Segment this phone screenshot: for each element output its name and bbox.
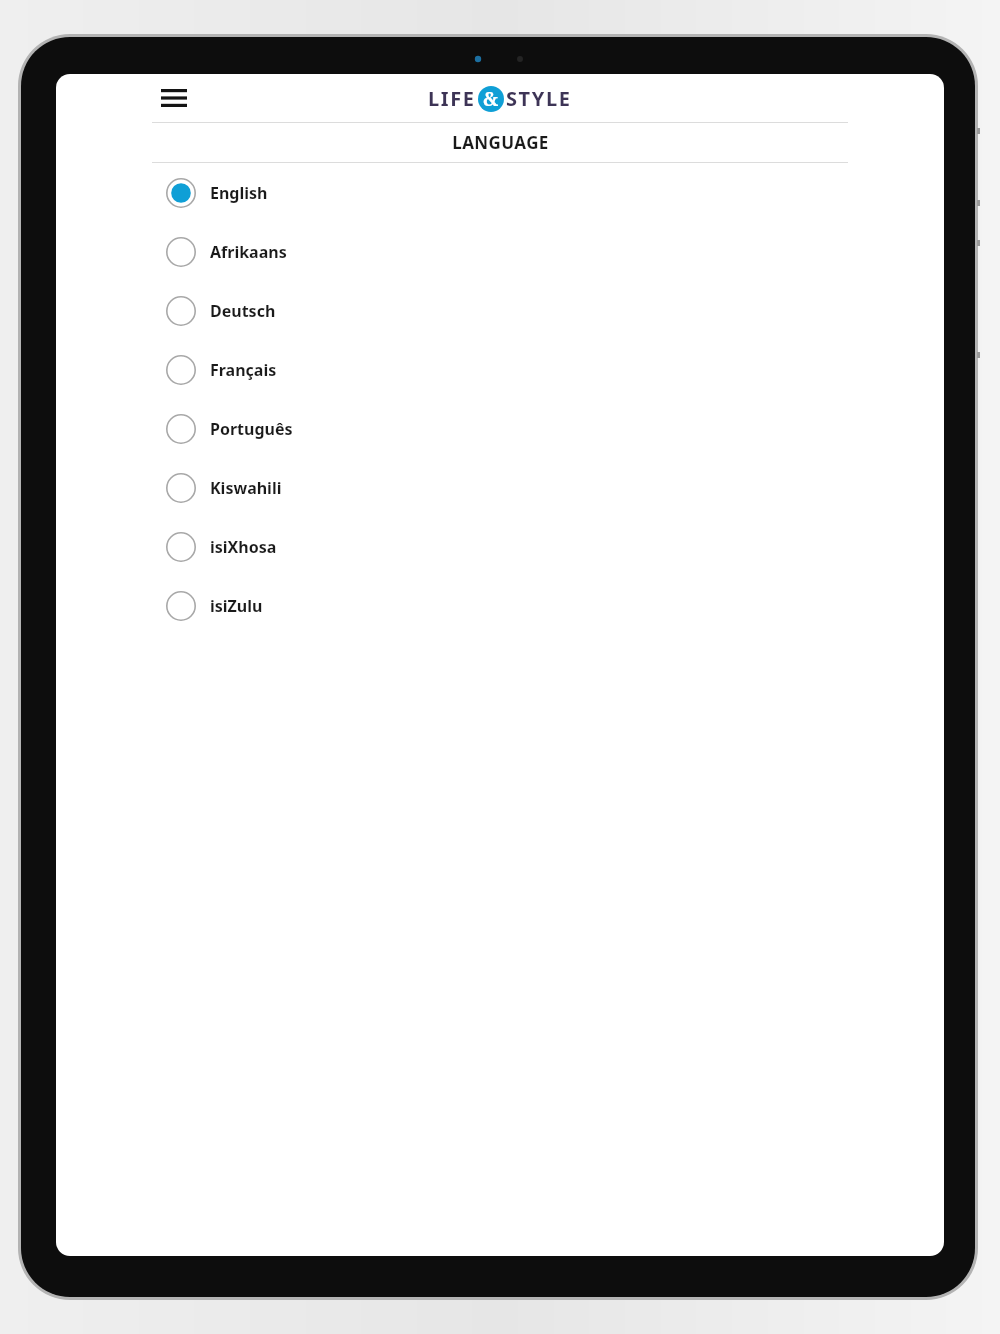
staticText: Kiswahili xyxy=(210,477,282,499)
staticText: Afrikaans xyxy=(210,241,287,263)
staticText: isiXhosa xyxy=(210,536,277,558)
button[interactable]: Afrikaans xyxy=(56,222,944,281)
button[interactable]: Menu xyxy=(152,76,196,120)
button[interactable]: isiZulu xyxy=(56,576,944,635)
staticText: English xyxy=(210,182,268,204)
staticText: STYLE xyxy=(506,85,572,112)
staticText: LANGUAGE xyxy=(452,131,549,154)
button[interactable]: English xyxy=(56,163,944,222)
button[interactable]: Português xyxy=(56,399,944,458)
button[interactable]: Français xyxy=(56,340,944,399)
staticText: Français xyxy=(210,359,277,381)
staticText: & xyxy=(483,86,499,112)
button[interactable]: Deutsch xyxy=(56,281,944,340)
staticText: Deutsch xyxy=(210,300,276,322)
button[interactable]: Kiswahili xyxy=(56,458,944,517)
staticText: Português xyxy=(210,418,293,440)
staticText: LIFE xyxy=(428,85,476,112)
staticText: isiZulu xyxy=(210,595,263,617)
button[interactable]: isiXhosa xyxy=(56,517,944,576)
